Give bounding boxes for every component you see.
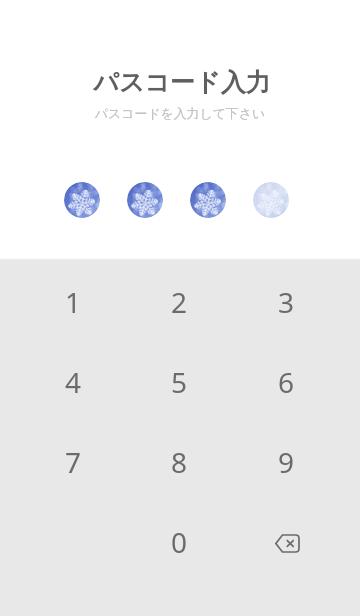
button[interactable]: 7 (20, 422, 126, 502)
staticText: 5 (171, 363, 188, 401)
button[interactable]: 2 (126, 262, 233, 342)
staticText: 4 (65, 363, 82, 401)
button[interactable]: 8 (126, 422, 233, 502)
staticText: 7 (65, 443, 82, 481)
staticText: 1 (65, 283, 82, 321)
button[interactable]: 0 (126, 502, 233, 582)
staticText: 2 (171, 283, 188, 321)
button[interactable]: 1 (20, 262, 126, 342)
staticText: 3 (278, 283, 295, 321)
button[interactable]: 6 (233, 342, 340, 422)
staticText: 9 (278, 443, 295, 481)
staticText: パスコードを入力して下さい (0, 106, 360, 122)
staticText: 6 (278, 363, 295, 401)
button[interactable]: Delete (233, 502, 340, 582)
staticText: パスコード入力 (2, 67, 360, 98)
button[interactable]: 4 (20, 342, 126, 422)
staticText: 0 (171, 523, 188, 561)
button[interactable]: 3 (233, 262, 340, 342)
staticText: 8 (171, 443, 188, 481)
button[interactable]: 9 (233, 422, 340, 502)
button[interactable]: 5 (126, 342, 233, 422)
